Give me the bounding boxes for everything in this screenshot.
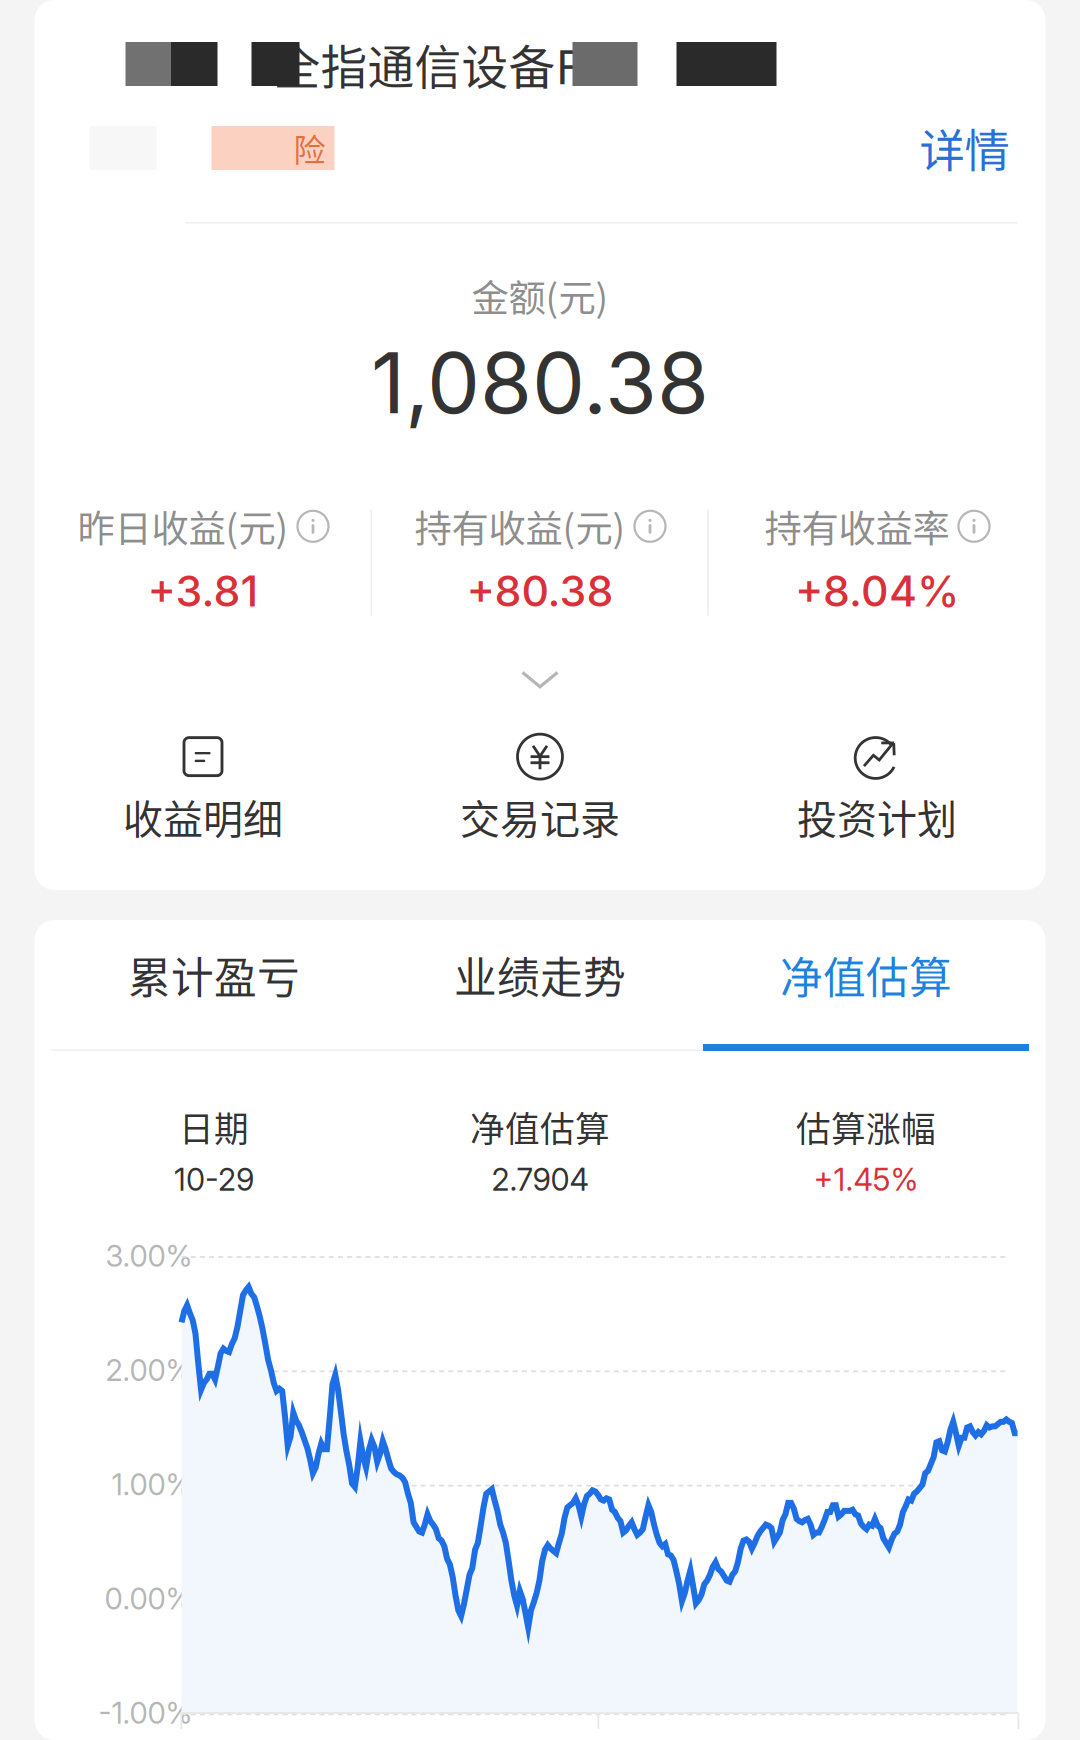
button[interactable]: 展开 <box>470 658 610 702</box>
staticText: 交易记录 <box>460 788 620 845</box>
staticText: 险 <box>293 125 325 171</box>
staticText: -1.00% <box>98 1695 192 1731</box>
staticText: +80.38 <box>466 565 613 617</box>
staticText: 持有收益(元) <box>414 499 625 553</box>
button[interactable]: 详情 <box>919 126 1009 170</box>
button[interactable]: 投资计划 <box>708 732 1045 848</box>
staticText: +8.04% <box>795 565 959 617</box>
staticText: 10-29 <box>174 1161 254 1198</box>
staticText: 2.00% <box>105 1353 192 1388</box>
staticText: 金额(元) <box>471 269 608 323</box>
button[interactable]: 收益明细 <box>34 732 371 848</box>
staticText: 1.00% <box>111 1467 192 1502</box>
staticText: 净值估算 <box>780 944 952 1006</box>
staticText: 估算涨幅 <box>796 1102 936 1152</box>
staticText: 1,080.38 <box>371 332 709 433</box>
staticText: 昨日收益(元) <box>77 499 288 553</box>
button[interactable]: 业绩走势 <box>377 928 703 1051</box>
staticText: 日期 <box>179 1102 249 1152</box>
staticText: 持有收益率 <box>764 499 949 553</box>
staticText: 3.00% <box>105 1238 192 1274</box>
staticText: +1.45% <box>813 1161 918 1198</box>
staticText: 详情 <box>919 115 1009 181</box>
staticText: 净值估算 <box>470 1102 610 1152</box>
staticText: +3.81 <box>147 565 258 617</box>
staticText: 投资计划 <box>797 788 957 845</box>
staticText: 2.7904 <box>491 1161 588 1198</box>
button[interactable]: 累计盈亏 <box>51 928 377 1051</box>
button[interactable]: 净值估算 <box>703 928 1029 1051</box>
staticText: 业绩走势 <box>454 944 626 1006</box>
staticText: 累计盈亏 <box>128 944 300 1006</box>
button[interactable]: 交易记录 <box>371 732 708 848</box>
staticText: 全指通信设备F <box>273 30 581 98</box>
staticText: 0.00% <box>104 1581 192 1617</box>
staticText: 收益明细 <box>123 788 283 845</box>
